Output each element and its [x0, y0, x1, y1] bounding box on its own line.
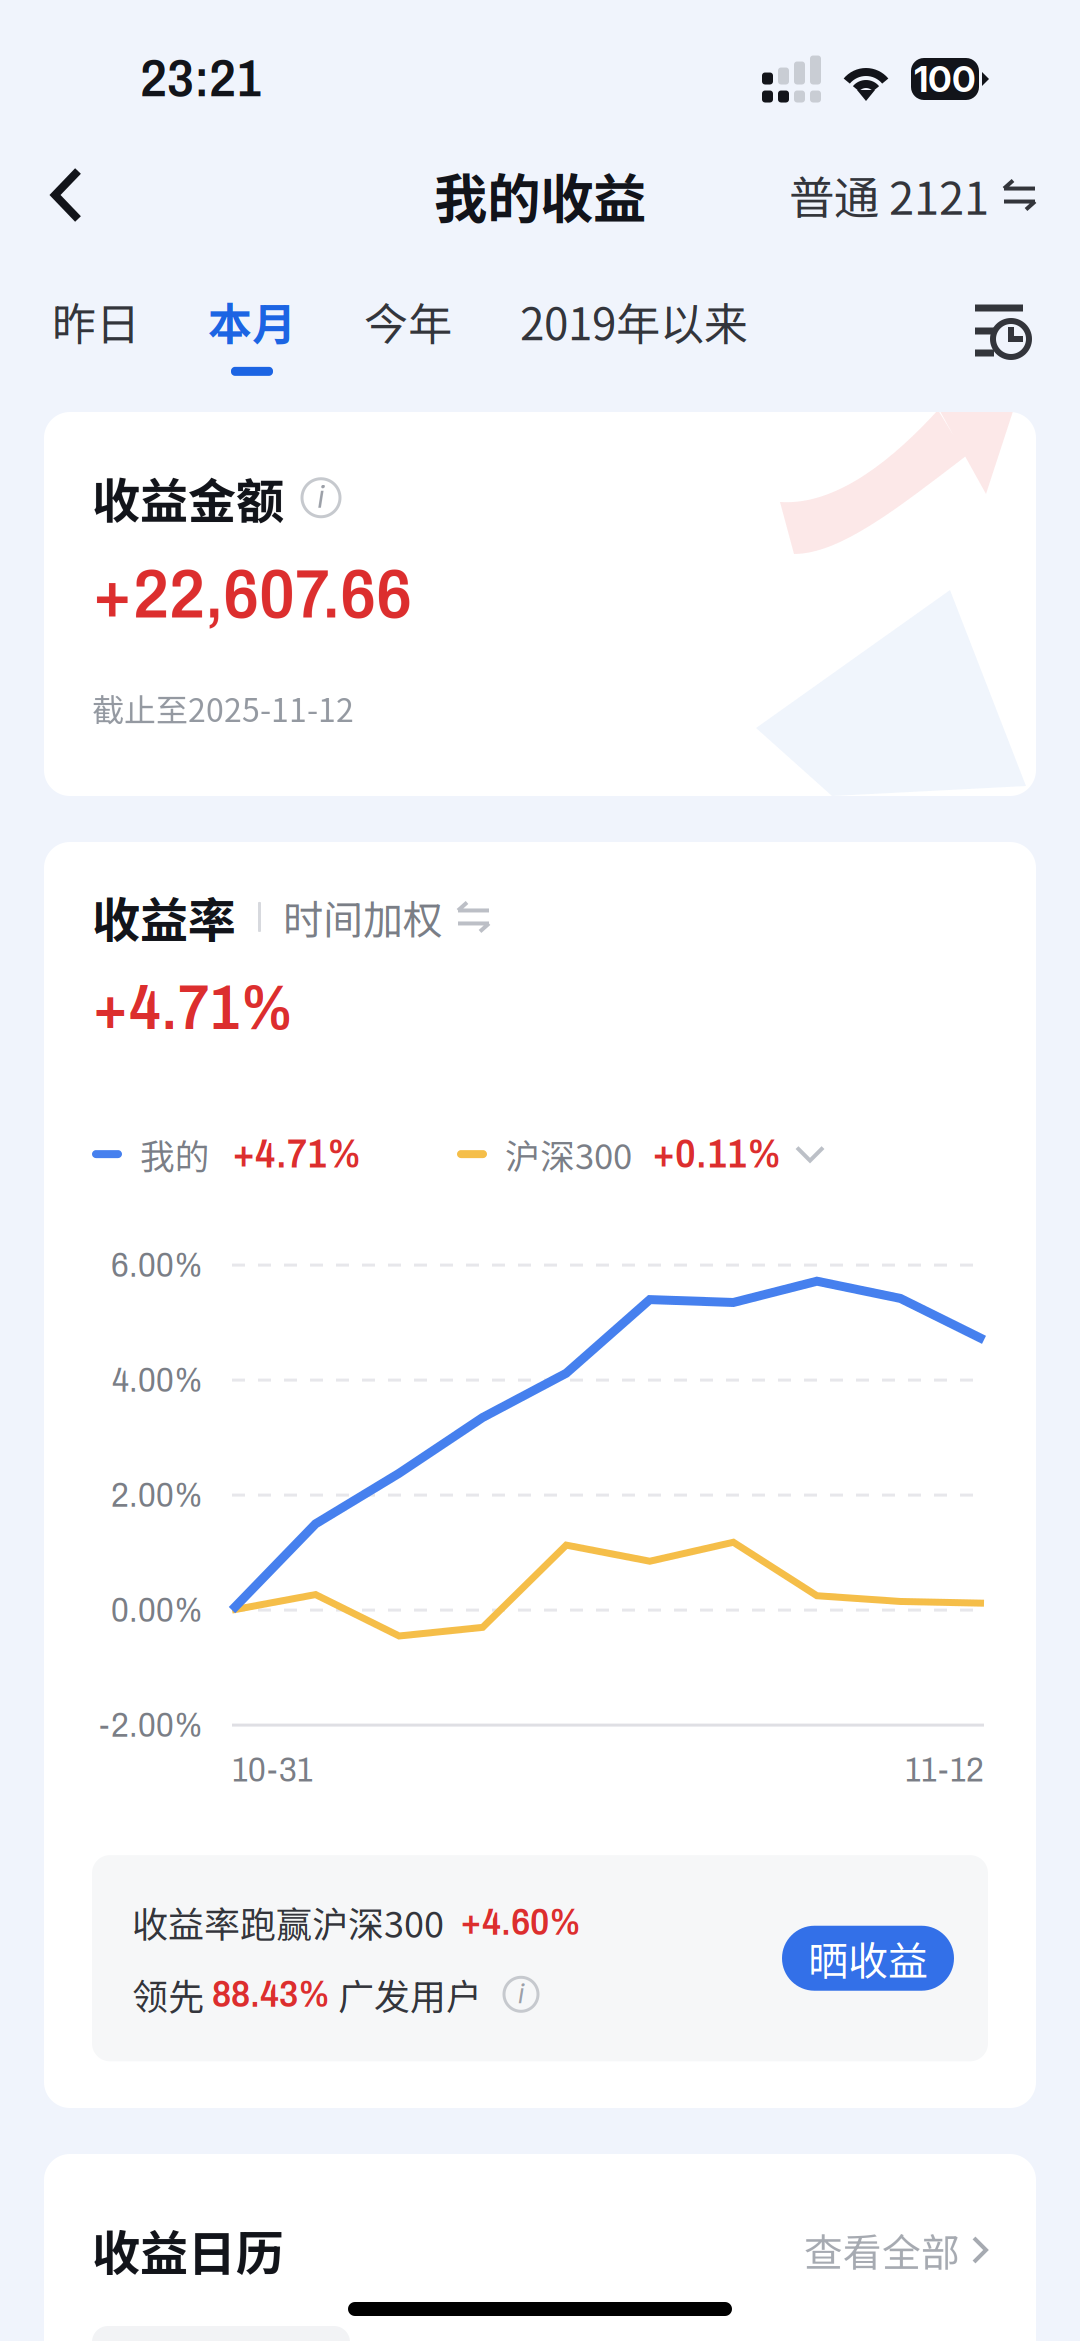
- staticText: 100: [914, 57, 976, 101]
- staticText: +22,607.66: [92, 556, 412, 632]
- staticText: 时间加权: [283, 888, 443, 946]
- button[interactable]: 今年: [330, 286, 486, 376]
- button[interactable]: 时间加权: [283, 880, 490, 954]
- staticText: 88.43%: [212, 1974, 330, 2015]
- staticText: 本月: [208, 289, 296, 353]
- staticText: 领先: [132, 1968, 204, 2020]
- staticText: +4.71%: [92, 974, 294, 1042]
- button[interactable]: 展开对比: [781, 1130, 839, 1179]
- staticText: i: [518, 1977, 524, 2010]
- button[interactable]: 历史记录: [958, 283, 1046, 379]
- staticText: 晒收益: [808, 1929, 928, 1987]
- staticText: 收益金额: [92, 463, 284, 532]
- staticText: 收益率跑赢沪深300: [132, 1896, 444, 1948]
- staticText: 11-12: [905, 1751, 984, 1789]
- staticText: 昨日: [52, 289, 140, 353]
- staticText: 2.00%: [111, 1476, 203, 1514]
- staticText: 2019年以来: [520, 289, 748, 353]
- staticText: 0.00%: [111, 1591, 203, 1629]
- staticText: 收益率: [92, 882, 236, 952]
- staticText: 截止至2025-11-12: [92, 685, 354, 731]
- staticText: 6.00%: [111, 1246, 203, 1284]
- button[interactable]: 本月: [174, 286, 330, 376]
- staticText: i: [317, 478, 324, 515]
- button[interactable]: 2019年以来: [486, 286, 782, 376]
- staticText: 广发用户: [338, 1968, 482, 2020]
- staticText: 沪深300: [505, 1129, 632, 1179]
- button[interactable]: 返回: [22, 149, 111, 241]
- staticText: 普通 2121: [789, 162, 989, 228]
- button[interactable]: 昨日: [18, 286, 174, 376]
- staticText: 4.00%: [112, 1361, 203, 1399]
- button[interactable]: 晒收益: [782, 1926, 954, 1991]
- button[interactable]: 查看全部: [804, 2208, 988, 2292]
- staticText: 查看全部: [804, 2222, 960, 2278]
- staticText: +4.60%: [460, 1902, 581, 1942]
- staticText: 收益日历: [92, 2215, 284, 2285]
- staticText: +4.71%: [232, 1132, 361, 1176]
- staticText: -2.00%: [99, 1706, 203, 1744]
- staticText: 我的收益: [434, 156, 646, 234]
- staticText: 23:21: [140, 51, 262, 107]
- staticText: 我的: [140, 1129, 210, 1179]
- button[interactable]: 普通 2121: [779, 146, 1046, 244]
- staticText: +0.11%: [652, 1132, 781, 1176]
- staticText: 今年: [364, 289, 452, 353]
- staticText: 10-31: [232, 1751, 313, 1789]
